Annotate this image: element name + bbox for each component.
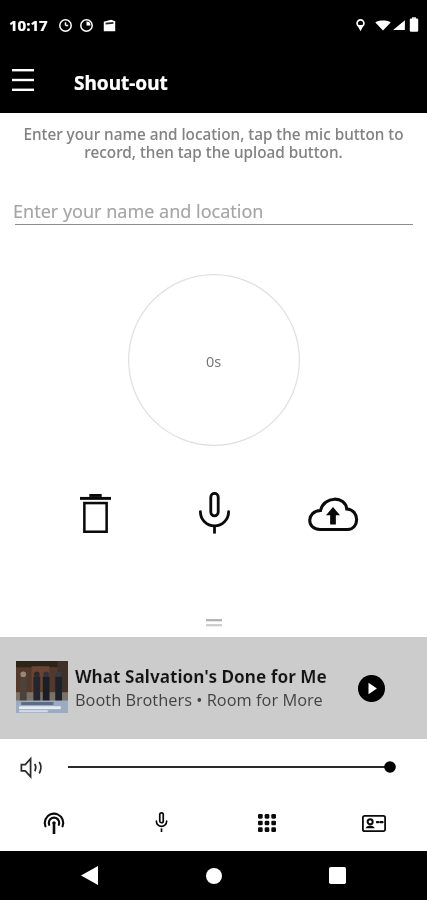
- button[interactable]: What Salvation's Done for Me: [0, 637, 427, 739]
- button[interactable]: Recent apps: [313, 851, 361, 900]
- button[interactable]: Contact: [350, 799, 398, 847]
- staticText: 0s: [206, 351, 222, 371]
- button[interactable]: Open navigation menu: [0, 57, 46, 103]
- button[interactable]: Volume slider: [62, 756, 402, 778]
- staticText: 10:17: [9, 15, 48, 35]
- staticText: What Salvation's Done for Me: [75, 665, 327, 688]
- button[interactable]: Apps: [243, 799, 291, 847]
- button[interactable]: Recording timer: [128, 274, 300, 446]
- staticText: Booth Brothers • Room for More: [75, 689, 323, 711]
- button[interactable]: Home: [190, 851, 238, 900]
- button[interactable]: Cast: [30, 799, 78, 847]
- button[interactable]: Record: [190, 489, 238, 537]
- button[interactable]: Delete recording: [71, 489, 119, 537]
- staticText: Enter your name and location, tap the mi…: [8, 124, 419, 162]
- staticText: Enter your name and location: [13, 199, 264, 224]
- staticText: Shout-out: [74, 70, 168, 96]
- button[interactable]: Upload: [306, 489, 360, 537]
- button[interactable]: Play: [351, 668, 391, 708]
- button[interactable]: Volume: [18, 754, 44, 780]
- button[interactable]: Back: [65, 851, 113, 900]
- button[interactable]: Microphone: [137, 798, 185, 846]
- button[interactable]: Enter your name and location: [0, 199, 427, 233]
